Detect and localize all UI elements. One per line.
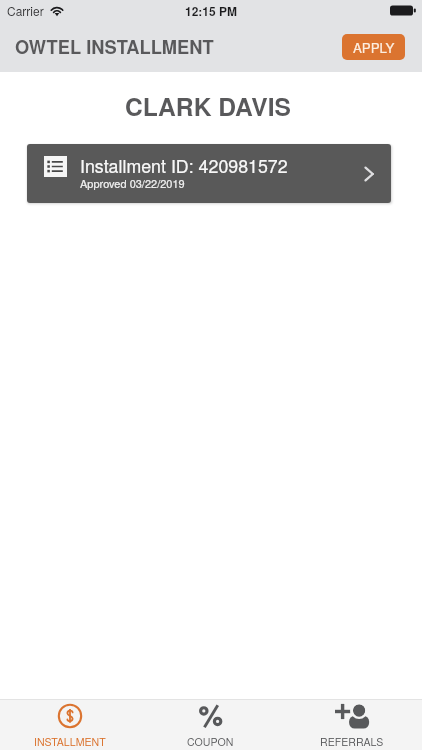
staticText: APPLY: [353, 38, 395, 57]
button[interactable]: INSTALLMENT: [0, 700, 140, 750]
button[interactable]: Installment ID: 420981572: [27, 144, 391, 203]
button[interactable]: APPLY: [342, 34, 405, 60]
button[interactable]: REFERRALS: [281, 700, 422, 750]
staticText: CLARK DAVIS: [0, 88, 419, 123]
other: Open installment details: [364, 166, 374, 182]
staticText: 12:15 PM: [185, 2, 238, 19]
staticText: Carrier: [7, 2, 44, 19]
staticText: REFERRALS: [320, 734, 384, 749]
staticText: Approved 03/22/2019: [80, 175, 185, 191]
staticText: Installment ID: 420981572: [80, 153, 288, 178]
staticText: INSTALLMENT: [34, 734, 106, 749]
staticText: COUPON: [187, 734, 234, 749]
button[interactable]: COUPON: [140, 700, 281, 750]
staticText: OWTEL INSTALLMENT: [15, 33, 214, 59]
